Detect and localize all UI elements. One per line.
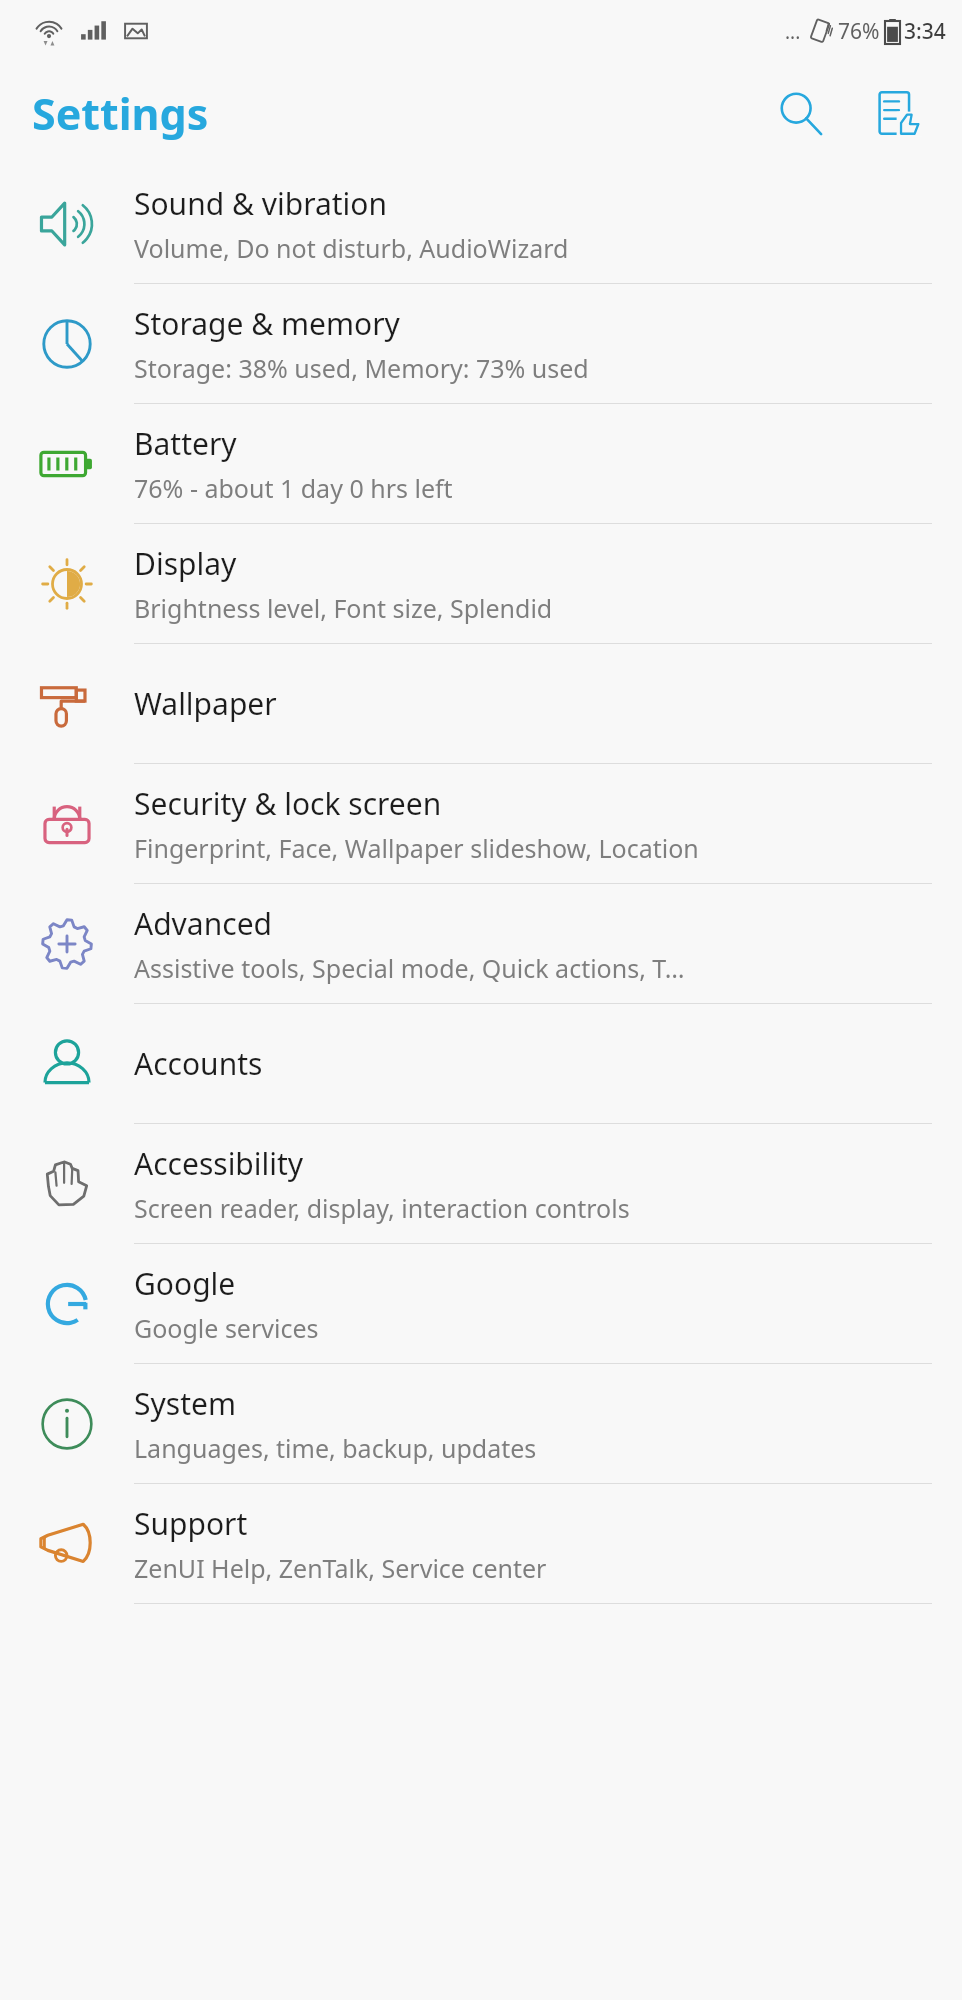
button[interactable]: Battery [0,404,962,523]
staticText: Storage & memory [134,303,400,344]
staticText: ... [785,19,801,45]
button[interactable]: Advanced [0,884,962,1003]
button[interactable]: Display [0,524,962,643]
button[interactable]: Wallpaper [0,644,962,763]
staticText: Google [134,1263,236,1304]
staticText: Assistive tools, Special mode, Quick act… [134,951,685,985]
button[interactable]: Security & lock screen [0,764,962,883]
staticText: ZenUI Help, ZenTalk, Service center [134,1551,547,1585]
staticText: Settings [32,84,209,143]
staticText: Fingerprint, Face, Wallpaper slideshow, … [134,831,699,865]
button[interactable]: Sound & vibration [0,164,962,283]
staticText: 3:34 [904,17,946,46]
staticText: 76% [838,17,880,46]
staticText: Screen reader, display, interaction cont… [134,1191,630,1225]
button[interactable]: Support [0,1484,962,1603]
button[interactable]: Search [760,73,840,153]
staticText: Storage: 38% used, Memory: 73% used [134,351,589,385]
staticText: System [134,1383,236,1424]
staticText: Languages, time, backup, updates [134,1431,537,1465]
staticText: Accounts [134,1043,263,1084]
staticText: Display [134,543,237,584]
staticText: Advanced [134,903,272,944]
staticText: Volume, Do not disturb, AudioWizard [134,231,569,265]
staticText: Battery [134,423,237,464]
staticText: Wallpaper [134,683,277,724]
staticText: Support [134,1503,248,1544]
staticText: Security & lock screen [134,783,442,824]
staticText: Brightness level, Font size, Splendid [134,591,553,625]
staticText: 76% - about 1 day 0 hrs left [134,471,453,505]
staticText: Sound & vibration [134,183,388,224]
button[interactable]: System [0,1364,962,1483]
button[interactable]: Accessibility [0,1124,962,1243]
button[interactable]: Send feedback [858,73,938,153]
staticText: Google services [134,1311,319,1345]
button[interactable]: Google [0,1244,962,1363]
button[interactable]: Storage & memory [0,284,962,403]
button[interactable]: Accounts [0,1004,962,1123]
staticText: Accessibility [134,1143,304,1184]
